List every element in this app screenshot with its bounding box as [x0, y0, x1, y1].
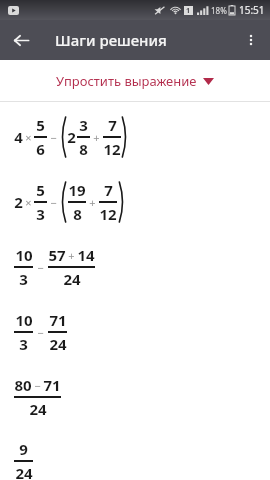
staticText: 12: [103, 139, 121, 159]
staticText: −: [50, 130, 57, 145]
button[interactable]: Back: [6, 25, 36, 55]
staticText: −: [37, 325, 44, 340]
staticText: 80: [14, 375, 32, 395]
staticText: 57: [48, 245, 66, 265]
staticText: 71: [43, 375, 61, 395]
staticText: 3: [19, 334, 28, 354]
staticText: 8: [79, 139, 88, 159]
staticText: ×: [25, 195, 32, 210]
staticText: 9: [19, 439, 28, 459]
staticText: −: [50, 195, 57, 210]
staticText: Упростить выражение: [56, 72, 197, 90]
staticText: 7: [108, 115, 117, 135]
staticText: 24: [29, 399, 47, 419]
button[interactable]: Упростить выражение: [0, 60, 270, 101]
staticText: +: [93, 130, 100, 145]
staticText: 10: [15, 245, 33, 265]
staticText: +: [89, 195, 96, 210]
staticText: Шаги решения: [55, 30, 167, 50]
staticText: 8: [73, 204, 82, 224]
staticText: 5: [36, 180, 45, 200]
staticText: 2: [14, 192, 23, 212]
staticText: 2: [67, 127, 76, 147]
staticText: 3: [19, 269, 28, 289]
button[interactable]: More options: [236, 25, 266, 55]
staticText: 18%: [211, 5, 227, 16]
staticText: 4: [14, 127, 23, 147]
staticText: 7: [104, 180, 113, 200]
staticText: 5: [36, 115, 45, 135]
staticText: 1: [186, 6, 191, 15]
staticText: ×: [25, 130, 32, 145]
staticText: −: [37, 260, 44, 275]
staticText: 14: [77, 245, 95, 265]
staticText: 10: [15, 310, 33, 330]
staticText: 6: [36, 139, 45, 159]
staticText: 19: [68, 180, 86, 200]
staticText: −: [34, 378, 41, 393]
staticText: 24: [15, 463, 33, 480]
staticText: +: [68, 248, 75, 263]
staticText: 71: [49, 310, 67, 330]
staticText: 24: [49, 334, 67, 354]
staticText: 3: [36, 204, 45, 224]
staticText: 24: [63, 269, 81, 289]
staticText: 12: [99, 204, 117, 224]
staticText: 3: [79, 115, 88, 135]
staticText: 15:51: [239, 3, 265, 17]
